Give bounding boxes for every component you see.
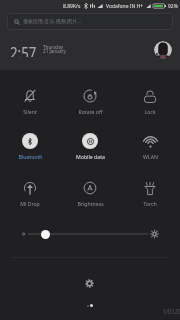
staticText: Brightness bbox=[77, 200, 104, 207]
button[interactable]: Silent bbox=[1, 84, 59, 114]
button[interactable]: WLAN bbox=[121, 129, 179, 159]
button[interactable]: Mi Drop bbox=[1, 176, 59, 206]
button[interactable]: Torch bbox=[121, 176, 179, 206]
staticText: Mi Drop bbox=[20, 200, 40, 207]
staticText: 搜索应用,音乐,视频,图片… bbox=[23, 18, 81, 25]
button[interactable]: Rotate off bbox=[61, 84, 119, 114]
button[interactable]: Settings bbox=[81, 275, 98, 292]
staticText: 8.89K/s bbox=[63, 3, 81, 10]
staticText: Vodafone IN H+ bbox=[106, 3, 144, 10]
staticText: Mobile data bbox=[76, 153, 105, 160]
staticText: Lock bbox=[144, 108, 156, 115]
button[interactable]: 搜索应用,音乐,视频,图片… bbox=[7, 13, 173, 30]
button[interactable]: Brightness bbox=[61, 176, 119, 206]
staticText: Bluetooth bbox=[18, 153, 43, 160]
button[interactable]: Bluetooth bbox=[1, 129, 59, 159]
staticText: Silent bbox=[23, 108, 37, 115]
staticText: MIUI bbox=[163, 307, 180, 317]
staticText: Thursday bbox=[43, 44, 64, 50]
button[interactable]: Lock bbox=[121, 84, 179, 114]
staticText: 92% bbox=[168, 3, 178, 10]
staticText: WLAN bbox=[143, 153, 158, 160]
button[interactable]: Brightness bbox=[0, 226, 180, 242]
button[interactable]: 2:57 bbox=[10, 41, 44, 57]
button[interactable]: Thursday bbox=[43, 44, 64, 50]
staticText: 2:57 bbox=[10, 41, 36, 57]
staticText: Rotate off bbox=[78, 108, 103, 115]
button[interactable]: Mobile data bbox=[61, 129, 119, 159]
button[interactable]: Account bbox=[154, 41, 172, 59]
staticText: 21 January bbox=[43, 48, 66, 54]
staticText: Torch bbox=[143, 200, 157, 207]
button[interactable]: 21 January bbox=[43, 48, 66, 54]
